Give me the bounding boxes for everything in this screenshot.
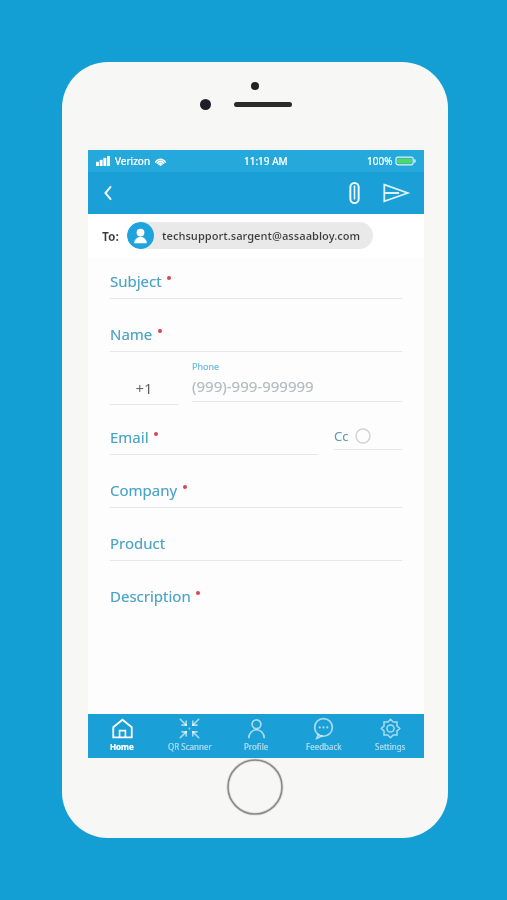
staticText: Home bbox=[110, 741, 134, 752]
staticText: 100% bbox=[367, 154, 393, 168]
button[interactable]: Email bbox=[110, 427, 318, 455]
button[interactable]: Name bbox=[110, 324, 402, 352]
staticText: Cc bbox=[334, 427, 349, 445]
staticText: Email bbox=[110, 427, 149, 447]
staticText: (999)-999-999999 bbox=[192, 376, 314, 396]
staticText: Phone bbox=[192, 360, 220, 372]
staticText: QR Scanner bbox=[168, 741, 212, 752]
staticText: Name bbox=[110, 324, 153, 344]
button[interactable]: Back bbox=[88, 173, 128, 213]
staticText: +1 bbox=[110, 378, 178, 398]
staticText: Description bbox=[110, 586, 191, 606]
staticText: Company bbox=[110, 480, 178, 500]
button[interactable]: QR Scanner bbox=[156, 714, 223, 758]
button[interactable]: Product bbox=[110, 533, 402, 561]
button[interactable]: Attach bbox=[334, 173, 374, 213]
button[interactable]: +1 bbox=[110, 360, 178, 405]
staticText: Product bbox=[110, 533, 166, 553]
staticText: Settings bbox=[375, 741, 406, 752]
button[interactable]: Cc bbox=[334, 427, 402, 450]
staticText: Feedback bbox=[306, 741, 342, 752]
button[interactable]: Profile bbox=[223, 714, 290, 758]
button[interactable]: techsupport.sargent@assaabloy.com bbox=[127, 222, 373, 249]
button[interactable]: Phone bbox=[192, 360, 402, 402]
staticText: To: bbox=[102, 228, 119, 244]
staticText: 11:19 AM bbox=[244, 154, 288, 168]
button[interactable]: Company bbox=[110, 480, 402, 508]
staticText: techsupport.sargent@assaabloy.com bbox=[162, 228, 361, 243]
button[interactable]: Description bbox=[110, 586, 402, 606]
button[interactable]: Subject bbox=[110, 271, 402, 299]
button[interactable]: Send bbox=[374, 172, 418, 214]
button[interactable]: Settings bbox=[357, 714, 424, 758]
staticText: Profile bbox=[244, 741, 269, 752]
button[interactable]: Home bbox=[88, 714, 156, 758]
staticText: Verizon bbox=[115, 154, 151, 168]
staticText: Subject bbox=[110, 271, 162, 291]
button[interactable]: Feedback bbox=[290, 714, 357, 758]
